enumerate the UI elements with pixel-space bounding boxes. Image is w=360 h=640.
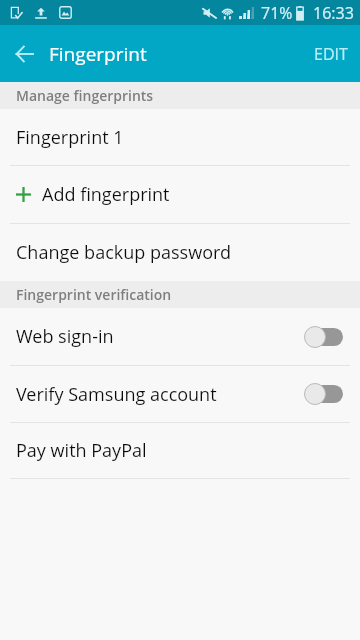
- staticText: Add fingerprint: [42, 182, 170, 207]
- button[interactable]: Navigate up: [0, 25, 49, 82]
- staticText: Fingerprint verification: [16, 285, 172, 304]
- staticText: EDIT: [314, 43, 348, 65]
- button[interactable]: Web sign-in: [0, 308, 360, 365]
- button[interactable]: EDIT: [298, 25, 360, 82]
- button[interactable]: Fingerprint 1: [0, 109, 360, 165]
- staticText: Pay with PayPal: [16, 438, 147, 463]
- staticText: Fingerprint: [49, 41, 147, 67]
- button[interactable]: Pay with PayPal: [0, 423, 360, 478]
- button[interactable]: Add fingerprint: [0, 166, 360, 223]
- staticText: Verify Samsung account: [16, 382, 217, 407]
- button[interactable]: Change backup password: [0, 224, 360, 281]
- staticText: Manage fingerprints: [16, 86, 154, 105]
- staticText: 16:33: [313, 2, 354, 24]
- button[interactable]: Verify Samsung account: [0, 366, 360, 422]
- staticText: Web sign-in: [16, 324, 114, 349]
- staticText: 71%: [261, 2, 293, 24]
- staticText: Change backup password: [16, 240, 232, 265]
- staticText: Fingerprint 1: [16, 125, 124, 150]
